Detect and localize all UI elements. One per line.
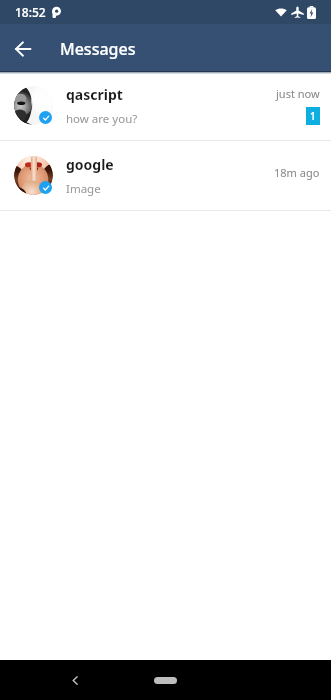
button[interactable]: qascript	[0, 71, 331, 140]
staticText: how are you?	[66, 111, 138, 127]
staticText: 18:52	[15, 4, 46, 20]
button[interactable]: Home	[154, 677, 177, 684]
staticText: qascript	[66, 85, 123, 104]
staticText: Image	[66, 181, 101, 197]
staticText: 1	[310, 109, 316, 123]
staticText: Messages	[60, 38, 136, 60]
button[interactable]: Back	[62, 667, 88, 693]
staticText: google	[66, 155, 114, 174]
button[interactable]: Back	[1, 27, 45, 71]
staticText: just now	[276, 86, 320, 101]
staticText: 18m ago	[274, 165, 320, 180]
button[interactable]: google	[0, 141, 331, 210]
